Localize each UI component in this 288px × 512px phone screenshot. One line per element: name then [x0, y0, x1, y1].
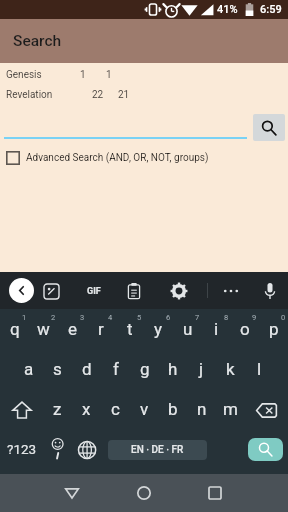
button[interactable]: a	[14, 349, 43, 389]
button[interactable]: c	[101, 389, 130, 429]
staticText: Revelation	[6, 89, 53, 101]
staticText: v	[140, 399, 149, 419]
button[interactable]: Settings	[171, 283, 187, 299]
button[interactable]: Search	[0, 19, 288, 63]
staticText: 22	[92, 89, 104, 101]
button[interactable]: y	[144, 309, 173, 349]
staticText: z	[53, 399, 62, 419]
button[interactable]: i	[202, 309, 231, 349]
button[interactable]: Change language	[72, 429, 101, 474]
button[interactable]: u	[173, 309, 202, 349]
button[interactable]: j	[187, 349, 216, 389]
staticText: m	[223, 399, 238, 419]
staticText: y	[154, 319, 163, 339]
button[interactable]: Voice input	[264, 282, 276, 300]
staticText: 9	[252, 313, 257, 322]
staticText: 0	[281, 313, 286, 322]
button[interactable]: v	[130, 389, 159, 429]
button[interactable]: e	[58, 309, 87, 349]
staticText: d	[82, 359, 92, 379]
button[interactable]: Shift	[0, 389, 43, 429]
button[interactable]: Emoji	[43, 429, 72, 474]
staticText: 21	[118, 89, 130, 101]
button[interactable]: p	[259, 309, 288, 349]
button[interactable]: Back	[58, 479, 86, 507]
staticText: c	[111, 399, 120, 419]
staticText: b	[168, 399, 178, 419]
staticText: 3	[80, 313, 85, 322]
staticText: Genesis	[6, 69, 42, 81]
button[interactable]: Recent apps	[201, 479, 229, 507]
staticText: 41%	[217, 3, 238, 16]
button[interactable]: n	[187, 389, 216, 429]
button[interactable]: Backspace	[245, 389, 288, 429]
button[interactable]: o	[230, 309, 259, 349]
staticText: f	[113, 359, 119, 379]
button[interactable]: Close keyboard extension	[9, 278, 34, 303]
staticText: 6	[166, 313, 171, 322]
staticText: 1	[106, 69, 112, 81]
staticText: 1	[80, 69, 86, 81]
button[interactable]: t	[115, 309, 144, 349]
staticText: w	[37, 319, 50, 339]
button[interactable]: b	[158, 389, 187, 429]
staticText: 6:59	[260, 3, 282, 16]
staticText: Advanced Search (AND, OR, NOT, groups)	[26, 152, 209, 164]
button[interactable]: Home	[130, 479, 158, 507]
button[interactable]: Search	[248, 438, 283, 461]
staticText: g	[140, 359, 150, 379]
staticText: n	[197, 399, 207, 419]
staticText: 1	[22, 313, 27, 322]
staticText: 8	[224, 313, 229, 322]
staticText: l	[257, 359, 262, 379]
button[interactable]: z	[43, 389, 72, 429]
staticText: 2	[51, 313, 56, 322]
staticText: o	[240, 319, 250, 339]
staticText: 4	[108, 313, 113, 322]
button[interactable]: w	[29, 309, 58, 349]
button[interactable]: r	[86, 309, 115, 349]
staticText: k	[226, 359, 235, 379]
staticText: t	[127, 319, 133, 339]
button[interactable]: Clipboard	[127, 283, 141, 299]
button[interactable]: ?123	[0, 429, 43, 474]
staticText: p	[269, 319, 279, 339]
button[interactable]: More options	[222, 284, 240, 298]
staticText: u	[183, 319, 193, 339]
staticText: q	[10, 319, 20, 339]
button[interactable]: s	[43, 349, 72, 389]
button[interactable]: h	[158, 349, 187, 389]
button[interactable]: l	[245, 349, 274, 389]
staticText: i	[214, 319, 219, 339]
staticText: Search	[13, 32, 62, 50]
button[interactable]: Search	[253, 114, 285, 141]
button[interactable]: GIF	[82, 284, 106, 298]
button[interactable]: g	[130, 349, 159, 389]
staticText: GIF	[87, 286, 101, 297]
button[interactable]: Advanced Search (AND, OR, NOT, groups)	[0, 149, 288, 167]
staticText: r	[98, 319, 104, 339]
staticText: s	[53, 359, 62, 379]
button[interactable]: f	[101, 349, 130, 389]
button[interactable]: k	[216, 349, 245, 389]
staticText: h	[168, 359, 178, 379]
staticText: ?123	[7, 441, 37, 457]
staticText: e	[68, 319, 78, 339]
button[interactable]: m	[216, 389, 245, 429]
button[interactable]: EN · DE · FR	[108, 440, 207, 460]
button[interactable]: d	[72, 349, 101, 389]
button[interactable]: q	[0, 309, 29, 349]
staticText: 7	[195, 313, 200, 322]
staticText: 5	[137, 313, 142, 322]
staticText: a	[24, 359, 34, 379]
staticText: j	[199, 359, 204, 379]
staticText: x	[82, 399, 91, 419]
button[interactable]: x	[72, 389, 101, 429]
staticText: EN · DE · FR	[131, 444, 184, 456]
button[interactable]: Stickers	[44, 284, 59, 299]
